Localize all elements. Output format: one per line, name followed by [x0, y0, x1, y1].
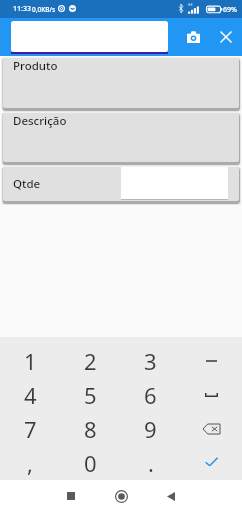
button[interactable]: 2	[60, 343, 120, 378]
staticText: 3	[144, 346, 157, 376]
button[interactable]: 9	[120, 412, 181, 446]
button[interactable]: 6	[120, 378, 181, 412]
staticText: 0	[84, 448, 97, 478]
button[interactable]: Back	[158, 480, 183, 512]
button[interactable]: 8	[60, 412, 120, 446]
staticText: ,	[27, 448, 33, 478]
button[interactable]: Home	[109, 480, 134, 512]
other: Space	[205, 393, 218, 397]
staticText: 1	[24, 346, 37, 376]
button[interactable]: 0	[60, 446, 120, 480]
button[interactable]: Recents	[58, 480, 83, 512]
button[interactable]: Backspace	[181, 412, 242, 446]
button[interactable]: Close	[213, 28, 238, 46]
button[interactable]: Minus	[181, 343, 242, 378]
button[interactable]: Descrição	[3, 113, 239, 162]
staticText: 8	[84, 414, 97, 444]
staticText: 6	[144, 380, 157, 410]
staticText: 7	[24, 414, 37, 444]
button[interactable]: ,	[0, 446, 60, 480]
staticText: 0,0KB/s	[32, 5, 56, 14]
staticText: .	[148, 448, 154, 478]
staticText: Descrição	[13, 113, 67, 129]
button[interactable]: 7	[0, 412, 60, 446]
button[interactable]: Qtde	[3, 167, 239, 201]
button[interactable]: 5	[60, 378, 120, 412]
button[interactable]: 3	[120, 343, 181, 378]
staticText: 4	[24, 380, 37, 410]
staticText: 5	[84, 380, 97, 410]
button[interactable]: Produto	[3, 58, 239, 108]
staticText: Produto	[13, 58, 58, 74]
staticText: 2	[84, 346, 97, 376]
button[interactable]	[11, 21, 168, 57]
staticText: 69%	[223, 5, 237, 15]
button[interactable]: Confirm	[181, 446, 242, 480]
staticText: Qtde	[13, 176, 41, 192]
button[interactable]: Space	[181, 378, 242, 412]
other: Confirm	[205, 457, 218, 467]
other: Backspace	[202, 423, 221, 435]
button[interactable]: .	[120, 446, 181, 480]
button[interactable]: 4	[0, 378, 60, 412]
staticText: 11:33	[13, 4, 31, 14]
button[interactable]: 1	[0, 343, 60, 378]
button[interactable]: Camera	[180, 28, 206, 46]
staticText: 9	[144, 414, 157, 444]
